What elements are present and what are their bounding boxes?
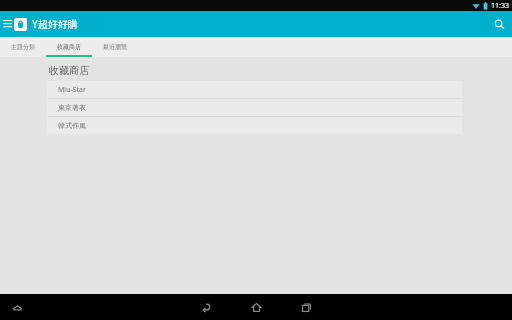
staticText: 最近瀏覽 <box>103 43 127 51</box>
button[interactable]: Hide navigation <box>6 296 28 318</box>
button[interactable]: Recent apps <box>294 295 318 319</box>
staticText: Y超好好購 <box>32 17 78 31</box>
staticText: 收藏商店 <box>57 43 81 51</box>
button[interactable]: 主題分類 <box>0 37 46 57</box>
staticText: 收藏商店 <box>49 64 89 77</box>
button[interactable]: 最近瀏覽 <box>92 37 138 57</box>
button[interactable]: 收藏商店 <box>46 37 92 57</box>
button[interactable]: Open navigation drawer <box>0 11 14 37</box>
staticText: 東京著衣 <box>58 103 86 112</box>
button[interactable]: Home <box>244 295 268 319</box>
staticText: 11:33 <box>491 1 509 11</box>
button[interactable]: 東京著衣 <box>47 99 462 116</box>
button[interactable]: Miu-Star <box>47 81 462 98</box>
staticText: 主題分類 <box>11 43 35 51</box>
button[interactable]: 韓式作風 <box>47 117 462 134</box>
staticText: 韓式作風 <box>58 121 86 130</box>
button[interactable]: Back <box>194 295 218 319</box>
staticText: Miu-Star <box>58 85 86 95</box>
button[interactable]: Search <box>486 11 512 37</box>
